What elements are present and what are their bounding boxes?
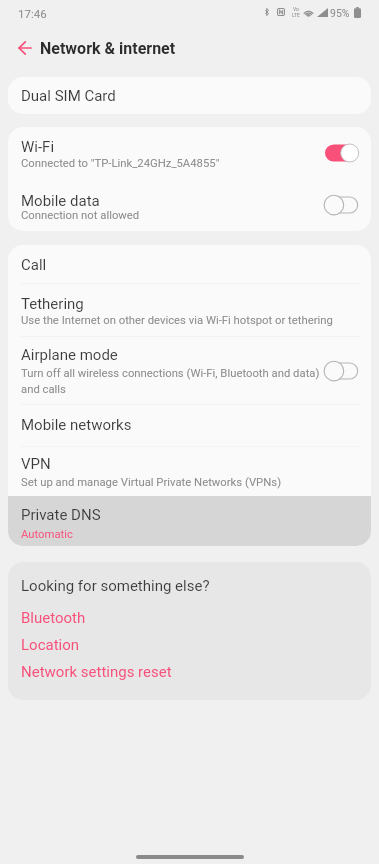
staticText: 95%: [330, 7, 350, 19]
button[interactable]: Back: [12, 35, 38, 61]
staticText: Mobile data: [21, 192, 100, 210]
staticText: Network & internet: [40, 39, 176, 58]
staticText: Use the Internet on other devices via Wi…: [21, 314, 333, 327]
staticText: Connected to "TP-Link_24GHz_5A4855": [21, 157, 220, 170]
staticText: Airplane mode: [21, 346, 118, 364]
button[interactable]: Call: [8, 245, 371, 283]
button[interactable]: Wi-Fi: [8, 127, 371, 179]
staticText: Mobile networks: [21, 416, 132, 434]
staticText: Tethering: [21, 295, 84, 313]
button[interactable]: Location: [8, 631, 371, 658]
staticText: LTE: [292, 12, 300, 18]
button[interactable]: Airplane mode: [8, 337, 371, 404]
staticText: VPN: [21, 455, 51, 473]
staticText: Location: [21, 636, 80, 654]
button[interactable]: Bluetooth: [8, 604, 371, 631]
staticText: Wi-Fi: [21, 138, 55, 156]
button[interactable]: Tethering: [8, 284, 371, 336]
staticText: Automatic: [21, 528, 73, 541]
button[interactable]: Mobile networks: [8, 405, 371, 446]
staticText: 17:46: [18, 7, 47, 20]
button[interactable]: Private DNS: [8, 496, 371, 546]
button[interactable]: Dual SIM Card: [8, 77, 371, 114]
staticText: Set up and manage Virtual Private Networ…: [21, 476, 282, 489]
button[interactable]: Network settings reset: [8, 658, 371, 685]
staticText: Looking for something else?: [21, 577, 210, 595]
staticText: Call: [21, 256, 47, 274]
staticText: Private DNS: [21, 506, 101, 524]
staticText: Turn off all wireless connections (Wi-Fi…: [21, 367, 325, 396]
staticText: Dual SIM Card: [21, 87, 116, 105]
button[interactable]: Mobile data: [8, 179, 371, 231]
staticText: Network settings reset: [21, 663, 172, 681]
staticText: Vo: [293, 6, 299, 12]
staticText: Bluetooth: [21, 609, 86, 627]
staticText: Connection not allowed: [21, 209, 140, 222]
button[interactable]: VPN: [8, 447, 371, 496]
